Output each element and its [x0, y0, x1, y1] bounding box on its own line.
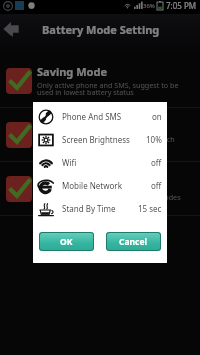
- button[interactable]: Wifi: [33, 151, 167, 174]
- staticText: Only active phone and SMS, suggest to be…: [37, 80, 187, 97]
- staticText: 15 sec: [138, 203, 162, 214]
- staticText: on: [152, 111, 162, 122]
- staticText: Phone And SMS: [62, 111, 122, 122]
- staticText: 36%: [143, 2, 155, 10]
- staticText: Screen Brightness: [62, 134, 130, 145]
- staticText: Mobile Network: [62, 180, 122, 191]
- staticText: OK: [60, 236, 73, 248]
- staticText: Customize your own battery saving modes: [37, 192, 187, 202]
- button[interactable]: Cancel: [107, 233, 160, 250]
- staticText: Stop all network during sleep time which…: [37, 134, 187, 151]
- staticText: Battery Mode Setting: [42, 22, 160, 37]
- staticText: Stand By Time: [62, 203, 116, 214]
- staticText: Saving Mode: [37, 64, 107, 79]
- button[interactable]: Sleep Mode: [0, 108, 200, 161]
- staticText: Cancel: [119, 236, 148, 248]
- button[interactable]: Phone And SMS: [33, 105, 167, 128]
- staticText: Wifi: [62, 157, 77, 168]
- button[interactable]: OK: [40, 233, 93, 250]
- button[interactable]: Screen Brightness: [33, 128, 167, 151]
- staticText: Custom Mode: [37, 176, 113, 191]
- staticText: Sleep Mode: [37, 118, 101, 133]
- button[interactable]: Mobile Network: [33, 174, 167, 197]
- staticText: off: [151, 157, 162, 168]
- button[interactable]: Stand By Time: [33, 197, 167, 220]
- button[interactable]: Back: [0, 14, 22, 50]
- button[interactable]: Saving Mode: [0, 54, 200, 107]
- button[interactable]: Custom Mode: [0, 162, 200, 215]
- staticText: off: [151, 180, 162, 191]
- staticText: 7:05 PM: [166, 0, 197, 11]
- staticText: 10%: [146, 134, 162, 145]
